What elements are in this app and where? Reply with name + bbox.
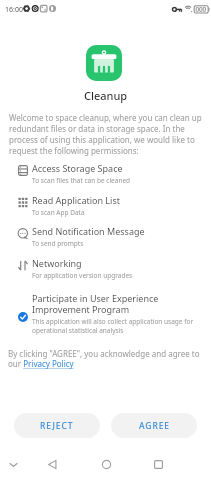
button[interactable]: Access Storage Space: [0, 162, 211, 190]
staticText: Cleanup: [84, 88, 128, 103]
button[interactable]: Recents: [148, 454, 168, 474]
staticText: Read Application List: [32, 194, 120, 206]
staticText: AGREE: [139, 420, 170, 432]
button[interactable]: Networking: [0, 257, 211, 285]
button[interactable]: REJECT: [14, 413, 100, 438]
button[interactable]: AGREE: [111, 413, 197, 438]
staticText: Send Notification Message: [32, 225, 145, 237]
staticText: This application will also collect appli…: [32, 317, 198, 335]
button[interactable]: Back: [42, 454, 62, 474]
staticText: To send prompts: [32, 239, 84, 248]
button[interactable]: Send Notification Message: [0, 225, 211, 253]
staticText: To scan files that can be cleaned: [32, 176, 131, 185]
button[interactable]: By clicking "AGREE", you acknowledge and…: [8, 348, 204, 370]
button[interactable]: Hide keyboard: [3, 455, 23, 475]
staticText: Access Storage Space: [32, 162, 123, 174]
staticText: Networking: [32, 257, 82, 269]
staticText: 16:00: [5, 5, 23, 15]
staticText: Participate in User Experience Improveme…: [32, 292, 184, 315]
staticText: REJECT: [40, 420, 74, 432]
staticText: Welcome to space cleanup, where you can …: [9, 112, 204, 156]
button[interactable]: Home: [96, 454, 116, 474]
staticText: For application version upgrades: [32, 271, 133, 280]
button[interactable]: Participate in User Experience Improveme…: [0, 291, 211, 336]
staticText: To scan App Data: [32, 208, 85, 217]
button[interactable]: Read Application List: [0, 194, 211, 222]
